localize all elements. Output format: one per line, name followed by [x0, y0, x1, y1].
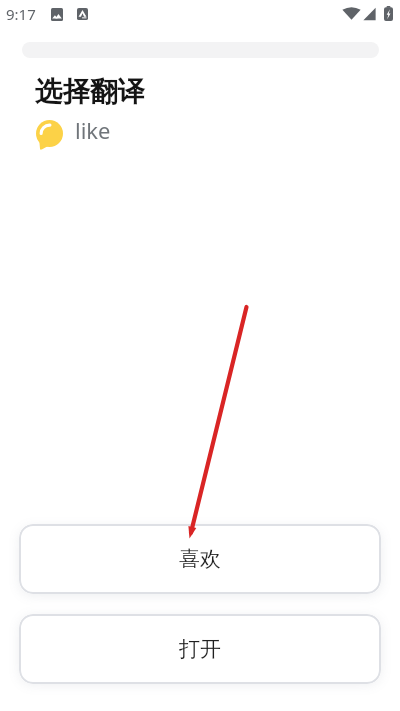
staticText: 喜欢	[179, 546, 221, 572]
staticText: 打开	[179, 636, 221, 662]
button[interactable]: 打开	[19, 614, 381, 684]
staticText: 9:17	[6, 4, 36, 24]
staticText: 选择翻译	[35, 75, 145, 110]
staticText: like	[75, 115, 111, 145]
button[interactable]: 喜欢	[19, 524, 381, 594]
